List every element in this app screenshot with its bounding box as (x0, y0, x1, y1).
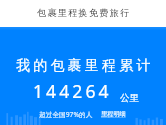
staticText: 里程明细 (101, 110, 126, 118)
staticText: 我的包裹里程累计 (16, 57, 154, 75)
staticText: 包裹里程换免费旅行 (37, 7, 131, 19)
staticText: 公里 (120, 92, 139, 104)
staticText: 超过全国97%的人 (39, 110, 93, 119)
staticText: 144264 (33, 79, 112, 103)
button[interactable]: 里程明细 (101, 111, 126, 119)
button[interactable]: 包裹里程换免费旅行 (0, 0, 166, 27)
